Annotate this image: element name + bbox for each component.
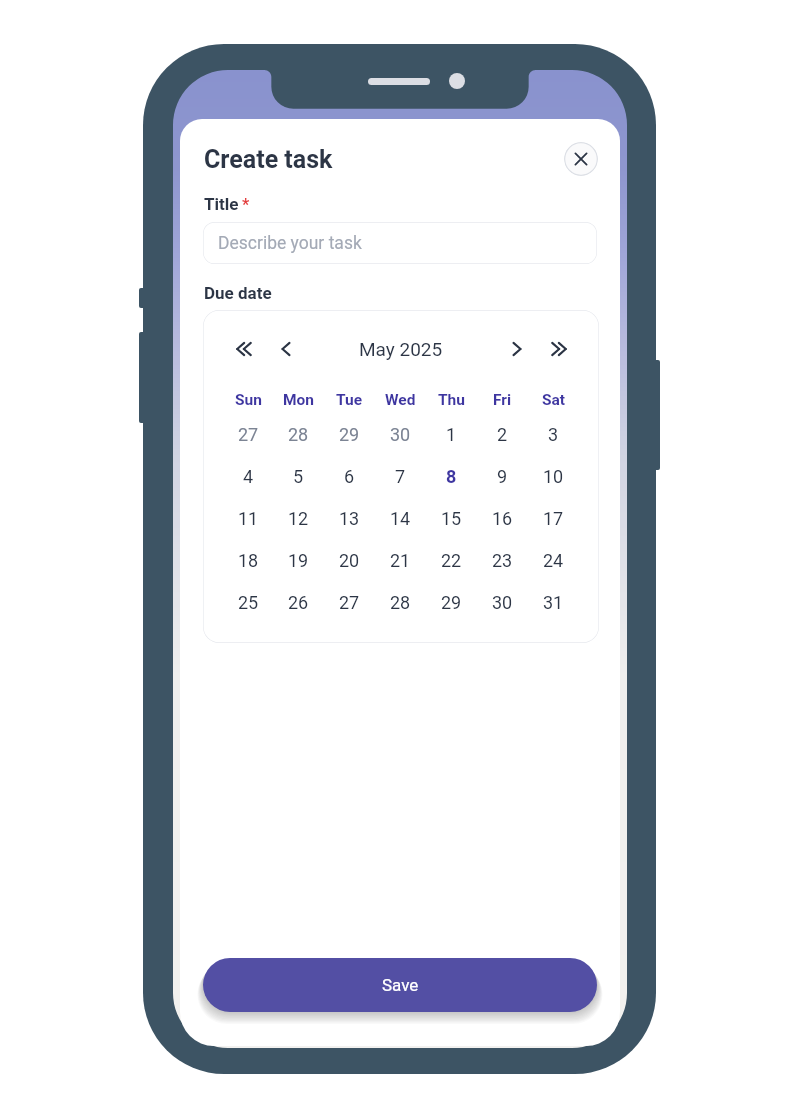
button[interactable]: 14 [375, 497, 426, 539]
staticText: 30 [492, 592, 513, 613]
staticText: 21 [390, 550, 411, 571]
button[interactable]: Previous year [230, 335, 258, 363]
button[interactable]: 25 [223, 581, 273, 623]
staticText: 15 [441, 508, 462, 529]
button[interactable]: 8 [426, 455, 477, 497]
staticText: Title [204, 194, 239, 214]
staticText: 11 [238, 508, 259, 529]
staticText: 6 [344, 466, 355, 487]
button[interactable]: 17 [528, 497, 579, 539]
button[interactable]: 7 [375, 455, 426, 497]
staticText: Due date [204, 283, 272, 303]
staticText: 3 [548, 424, 559, 445]
staticText: 16 [492, 508, 513, 529]
staticText: 7 [395, 466, 406, 487]
button[interactable]: Save [203, 958, 597, 1012]
staticText: 20 [339, 550, 360, 571]
button[interactable]: 31 [528, 581, 579, 623]
staticText: Save [382, 975, 419, 995]
button[interactable]: 4 [223, 455, 273, 497]
button[interactable]: 16 [477, 497, 528, 539]
button[interactable]: 18 [223, 539, 273, 581]
button[interactable]: Create task [204, 141, 333, 177]
staticText: 29 [441, 592, 462, 613]
staticText: Sat [542, 391, 566, 409]
staticText: Create task [204, 145, 333, 174]
staticText: 26 [288, 592, 309, 613]
button[interactable]: 6 [324, 455, 375, 497]
button[interactable]: 10 [528, 455, 579, 497]
staticText: Describe your task [218, 233, 362, 254]
staticText: Thu [438, 391, 465, 409]
staticText: 28 [288, 424, 309, 445]
button[interactable]: 15 [426, 497, 477, 539]
button[interactable]: 11 [223, 497, 273, 539]
staticText: 23 [492, 550, 513, 571]
button[interactable]: 26 [273, 581, 324, 623]
button[interactable]: 20 [324, 539, 375, 581]
staticText: 24 [543, 550, 564, 571]
staticText: 5 [293, 466, 304, 487]
staticText: 10 [543, 466, 564, 487]
staticText: Tue [336, 391, 363, 409]
button[interactable]: 28 [375, 581, 426, 623]
button[interactable]: Previous month [272, 335, 300, 363]
staticText: 27 [238, 424, 259, 445]
button[interactable]: 22 [426, 539, 477, 581]
button[interactable]: 24 [528, 539, 579, 581]
staticText: 1 [446, 424, 457, 445]
staticText: 29 [339, 424, 360, 445]
staticText: 22 [441, 550, 462, 571]
button[interactable]: 19 [273, 539, 324, 581]
staticText: Wed [385, 391, 416, 409]
button[interactable]: Close [564, 142, 598, 176]
button[interactable]: 9 [477, 455, 528, 497]
button[interactable]: 12 [273, 497, 324, 539]
button[interactable]: Describe your task [203, 222, 597, 264]
button[interactable]: Next year [545, 335, 573, 363]
staticText: May 2025 [359, 338, 443, 360]
staticText: Sun [235, 391, 262, 409]
staticText: 19 [288, 550, 309, 571]
staticText: 27 [339, 592, 360, 613]
staticText: 17 [543, 508, 564, 529]
staticText: 25 [238, 592, 259, 613]
staticText: * [242, 195, 250, 214]
staticText: 12 [288, 508, 309, 529]
button[interactable]: 23 [477, 539, 528, 581]
button[interactable]: 29 [426, 581, 477, 623]
button[interactable]: 2 [477, 413, 528, 455]
button[interactable]: Next month [503, 335, 531, 363]
staticText: 2 [497, 424, 508, 445]
button[interactable]: 27 [324, 581, 375, 623]
staticText: 18 [238, 550, 259, 571]
button[interactable]: 5 [273, 455, 324, 497]
button[interactable]: 30 [477, 581, 528, 623]
staticText: 31 [543, 592, 564, 613]
button[interactable]: 13 [324, 497, 375, 539]
staticText: 4 [243, 466, 254, 487]
button[interactable]: 29 [324, 413, 375, 455]
button[interactable]: 28 [273, 413, 324, 455]
staticText: 13 [339, 508, 360, 529]
staticText: Fri [493, 391, 512, 409]
staticText: 9 [497, 466, 508, 487]
button[interactable]: 27 [223, 413, 273, 455]
button[interactable]: 1 [426, 413, 477, 455]
staticText: 14 [390, 508, 411, 529]
button[interactable]: 21 [375, 539, 426, 581]
staticText: 8 [446, 466, 457, 487]
staticText: 28 [390, 592, 411, 613]
button[interactable]: 3 [528, 413, 579, 455]
staticText: Mon [283, 391, 315, 409]
button[interactable]: 30 [375, 413, 426, 455]
staticText: 30 [390, 424, 411, 445]
